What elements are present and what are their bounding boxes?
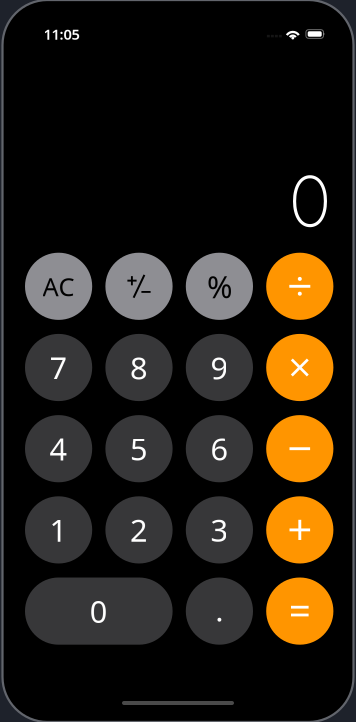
staticText: 11:05: [43, 24, 79, 44]
staticText: 3: [210, 509, 228, 550]
staticText: 7: [50, 347, 68, 388]
button[interactable]: Multiply: [266, 334, 333, 401]
button[interactable]: 4: [25, 415, 92, 482]
button[interactable]: AC: [25, 253, 92, 320]
button[interactable]: 8: [105, 334, 173, 401]
button[interactable]: Divide: [266, 253, 333, 320]
staticText: 2: [130, 509, 148, 550]
button[interactable]: 6: [186, 415, 253, 482]
button[interactable]: Plus Minus: [105, 253, 173, 320]
button[interactable]: Minus: [266, 415, 333, 482]
staticText: 9: [210, 347, 228, 388]
button[interactable]: %: [186, 253, 253, 320]
staticText: 4: [50, 428, 68, 469]
button[interactable]: 7: [25, 334, 92, 401]
button[interactable]: 5: [105, 415, 173, 482]
button[interactable]: 2: [105, 496, 173, 563]
staticText: 1: [50, 509, 68, 550]
staticText: 6: [210, 428, 228, 469]
button[interactable]: 0: [25, 577, 173, 645]
button[interactable]: Plus: [266, 496, 333, 563]
button[interactable]: 3: [186, 496, 253, 563]
button[interactable]: 1: [25, 496, 92, 563]
staticText: %: [207, 266, 232, 307]
staticText: AC: [43, 269, 75, 303]
button[interactable]: Decimal point: [186, 577, 253, 645]
staticText: 5: [130, 428, 148, 469]
button[interactable]: Equals: [266, 577, 333, 645]
staticText: 8: [130, 347, 148, 388]
button[interactable]: 9: [186, 334, 253, 401]
staticText: 0: [90, 591, 108, 631]
